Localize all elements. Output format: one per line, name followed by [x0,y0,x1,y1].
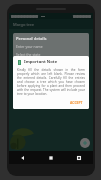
staticText: Select the state [16,52,41,57]
staticText: Important Note [24,59,58,65]
staticText: Choose a tree to plant [16,68,52,73]
button[interactable]: Recents [65,151,93,164]
staticText: Margo tree [13,22,34,27]
button[interactable]: ACCEPT [68,99,85,106]
button[interactable]: Location [16,60,86,65]
button[interactable]: Choose a tree to plant [16,68,86,73]
staticText: Enter your name [16,44,43,49]
button[interactable]: Enter your name [16,44,86,49]
button[interactable]: Add [80,138,90,148]
staticText: Personal details [16,36,47,41]
staticText: ACCEPT [70,100,83,105]
staticText: Location [16,60,30,65]
button[interactable]: Select the state [16,52,86,57]
button[interactable]: Back [9,151,37,164]
button[interactable]: Home [37,151,65,164]
staticText: Kindly fill the details shown in the for… [17,68,85,96]
